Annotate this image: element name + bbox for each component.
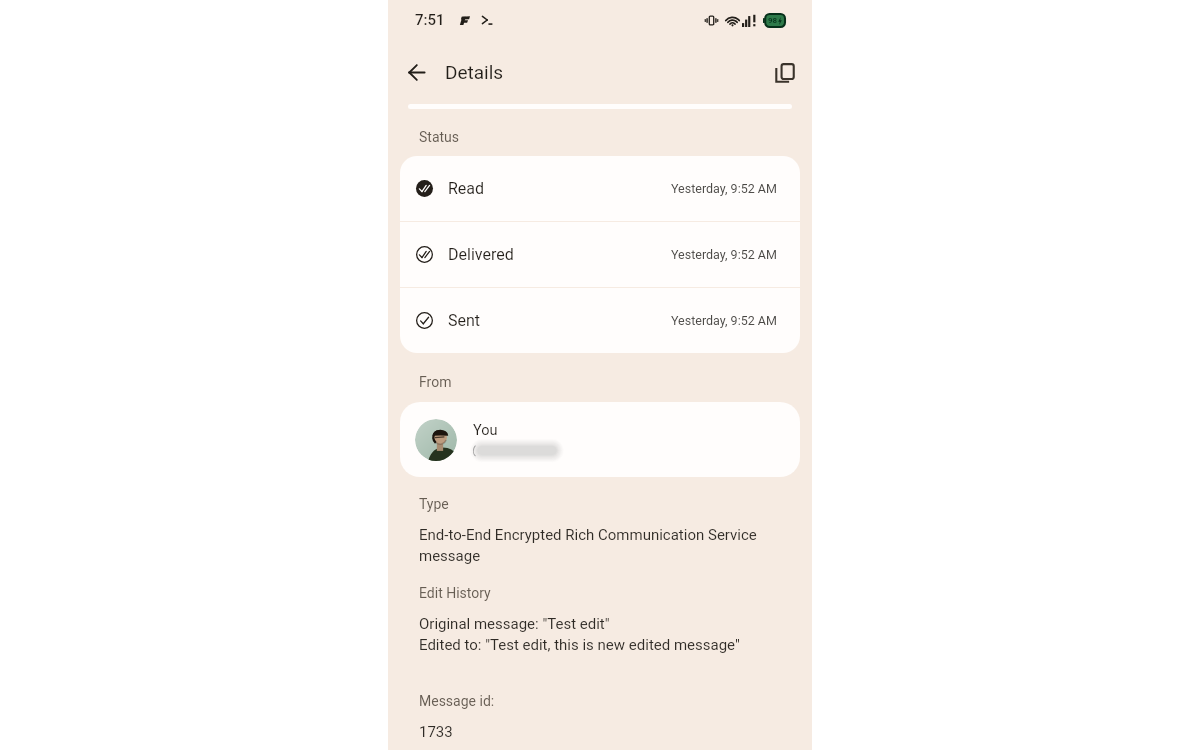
button[interactable]: Copy: [760, 48, 808, 96]
button[interactable]: Sent: [400, 288, 800, 353]
staticText: End-to-End Encrypted Rich Communication …: [419, 523, 772, 565]
staticText: Edit History: [419, 585, 491, 601]
staticText: Yesterday, 9:52 AM: [671, 247, 777, 262]
staticText: Delivered: [448, 245, 514, 264]
staticText: Read: [448, 179, 485, 198]
staticText: 98: [768, 16, 778, 25]
staticText: Details: [445, 61, 504, 83]
staticText: Original message: "Test edit" Edited to:…: [419, 612, 740, 654]
staticText: Yesterday, 9:52 AM: [671, 181, 777, 196]
staticText: Sent: [448, 311, 481, 330]
staticText: 1733: [419, 720, 453, 741]
button[interactable]: Delivered: [400, 222, 800, 287]
staticText: Message id:: [419, 693, 495, 709]
staticText: Type: [419, 496, 449, 512]
staticText: Yesterday, 9:52 AM: [671, 313, 777, 328]
staticText: From: [419, 374, 452, 390]
staticText: 7:51: [415, 11, 445, 29]
button[interactable]: Read: [400, 156, 800, 221]
staticText: Status: [419, 129, 460, 145]
button[interactable]: You: [400, 402, 800, 477]
staticText: You: [473, 422, 498, 439]
button[interactable]: Back: [392, 48, 440, 96]
